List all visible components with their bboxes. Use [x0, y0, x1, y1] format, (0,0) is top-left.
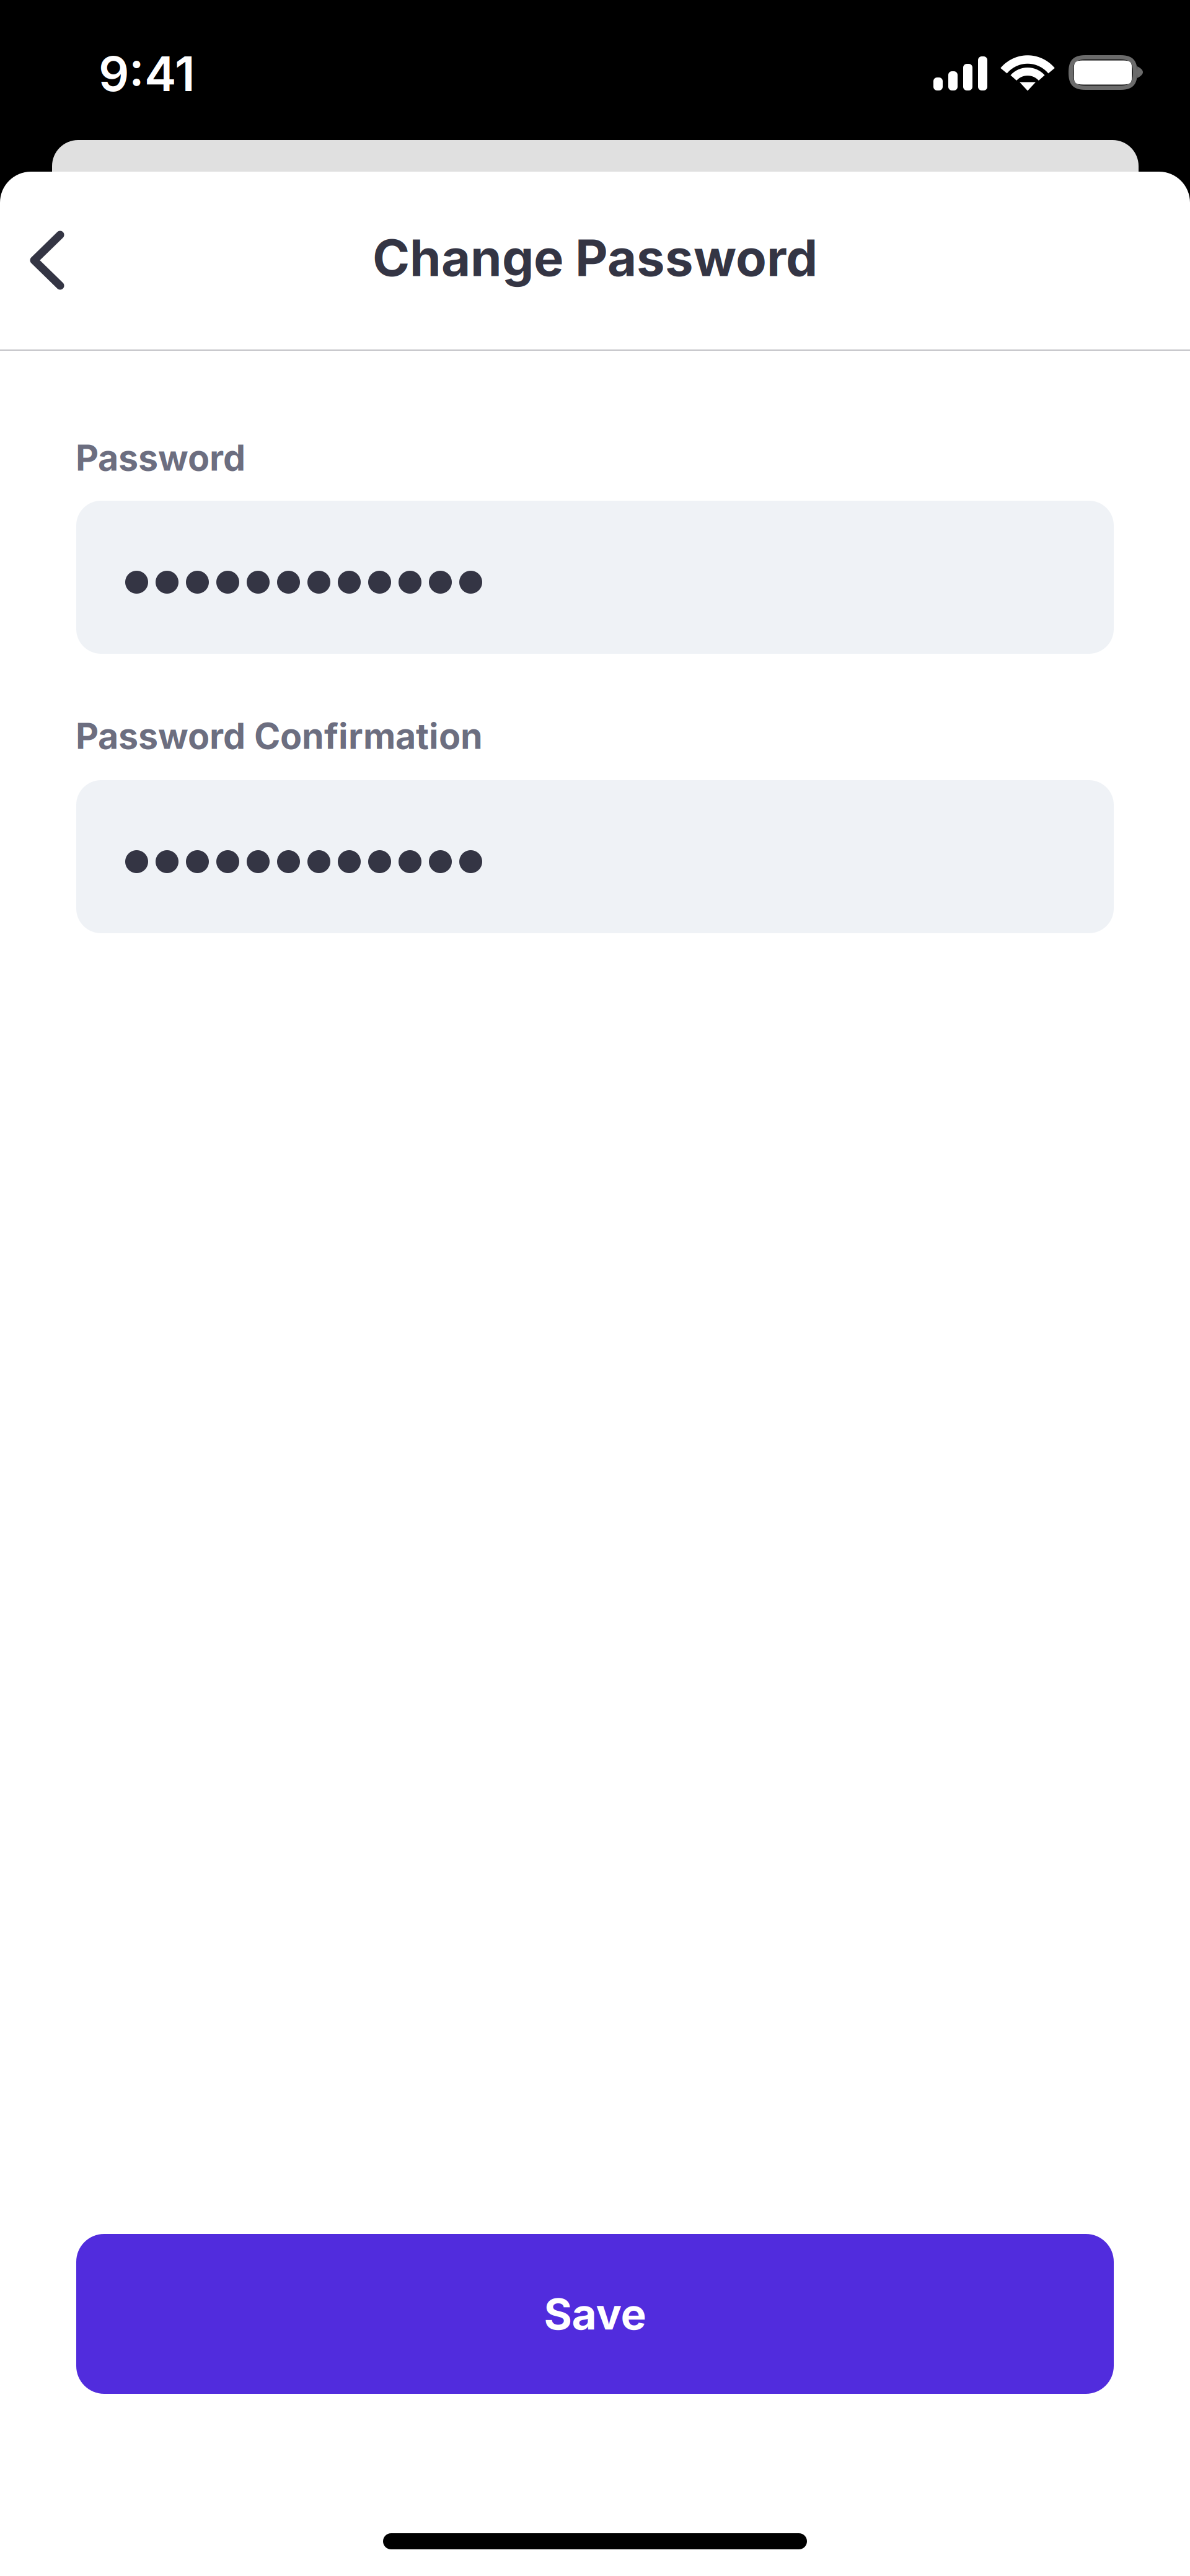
staticText: 9:41: [99, 45, 195, 103]
staticText: Password Confirmation: [76, 714, 483, 757]
staticText: Save: [544, 2288, 646, 2340]
staticText: Change Password: [372, 227, 818, 288]
button[interactable]: Back: [1, 214, 94, 307]
button[interactable]: Save: [76, 2234, 1114, 2394]
staticText: Password: [76, 436, 245, 479]
